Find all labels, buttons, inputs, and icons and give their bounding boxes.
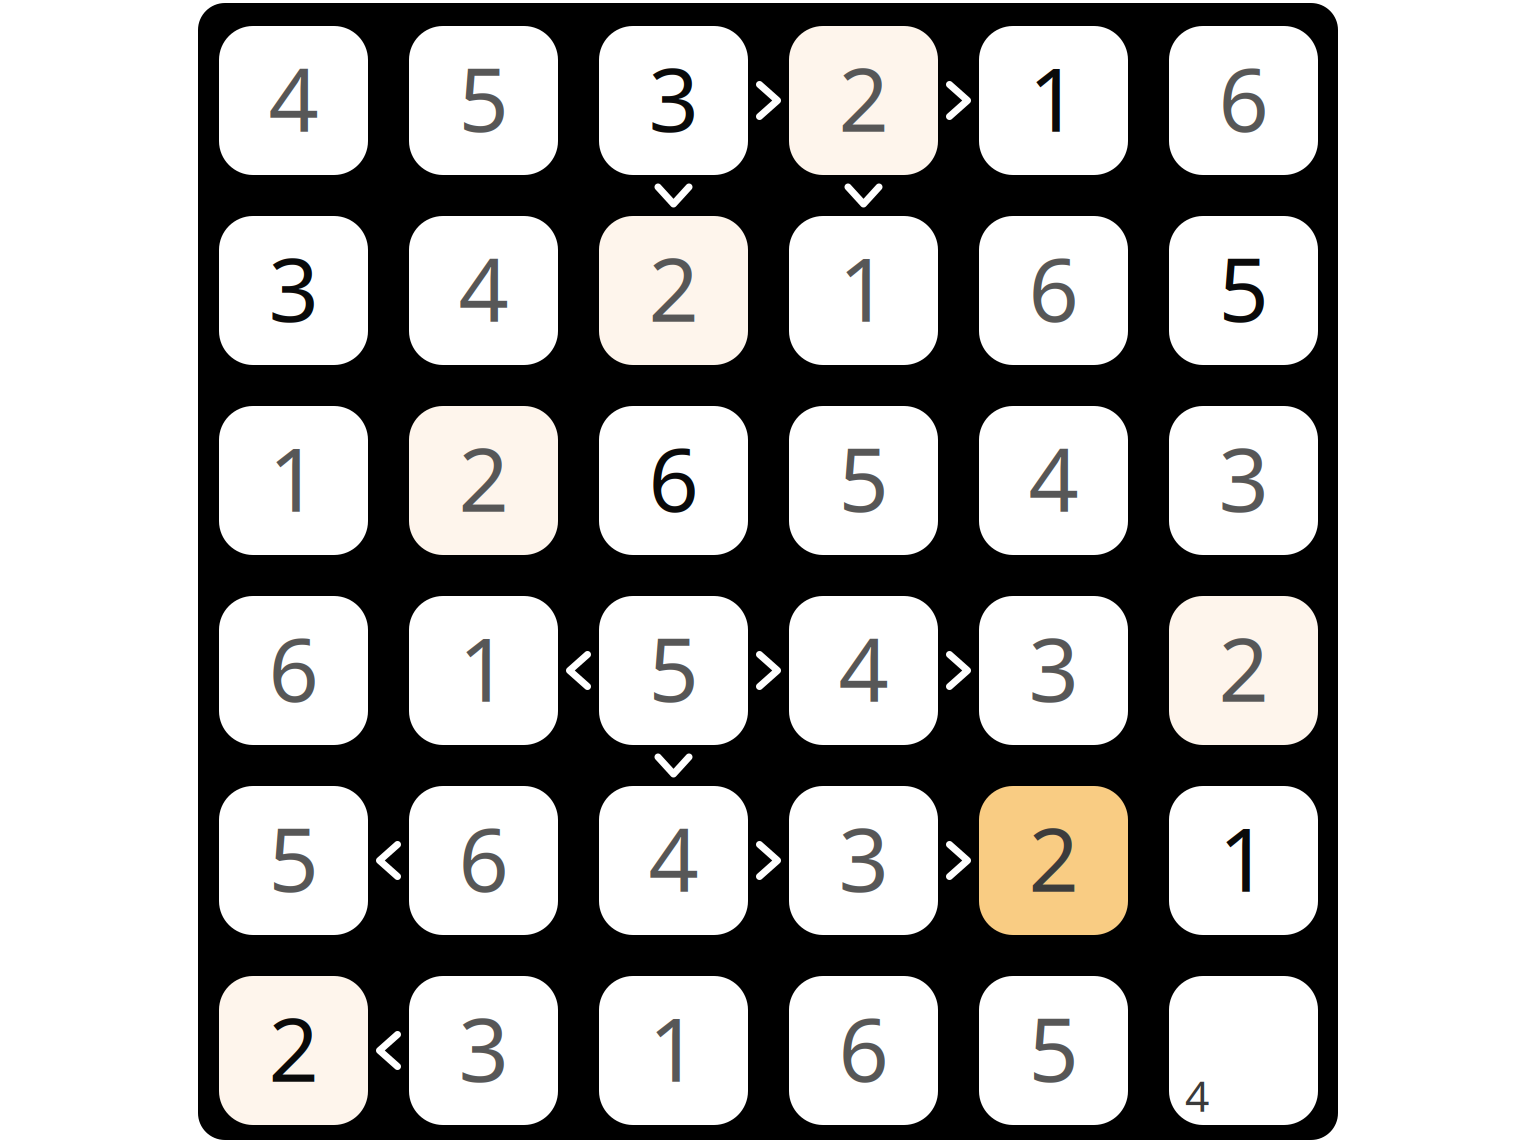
staticText: 5 xyxy=(648,609,698,726)
button[interactable]: Row 1, column 1, 4 xyxy=(219,26,368,175)
button[interactable]: Row 5, column 4, 3 xyxy=(789,786,938,935)
staticText: 2 xyxy=(458,419,508,536)
staticText: 6 xyxy=(648,419,698,536)
button[interactable]: Row 1, column 3, clue 3 xyxy=(599,26,748,175)
button[interactable]: Row 6, column 6, empty, note 4 xyxy=(1169,976,1318,1125)
staticText: 6 xyxy=(458,799,508,916)
button[interactable]: Row 5, column 6, clue 1 xyxy=(1169,786,1318,935)
staticText: 1 xyxy=(458,609,508,726)
staticText: 5 xyxy=(458,39,508,156)
staticText: 1 xyxy=(648,989,698,1106)
button[interactable]: Row 6, column 2, 3 xyxy=(409,976,558,1125)
button[interactable]: Row 2, column 2, 4 xyxy=(409,216,558,365)
staticText: 5 xyxy=(268,799,318,916)
staticText: 1 xyxy=(838,229,888,346)
button[interactable]: Row 6, column 5, 5 xyxy=(979,976,1128,1125)
button[interactable]: Row 5, column 2, 6 xyxy=(409,786,558,935)
staticText: 5 xyxy=(838,419,888,536)
button[interactable]: Row 2, column 1, clue 3 xyxy=(219,216,368,365)
staticText: 4 xyxy=(268,39,318,156)
staticText: 4 xyxy=(1185,1067,1209,1123)
button[interactable]: Row 5, column 3, 4 xyxy=(599,786,748,935)
staticText: 3 xyxy=(1218,419,1268,536)
button[interactable]: Row 3, column 1, 1 xyxy=(219,406,368,555)
button[interactable]: Row 3, column 2, 2 xyxy=(409,406,558,555)
button[interactable]: Row 3, column 4, 5 xyxy=(789,406,938,555)
staticText: 2 xyxy=(838,39,888,156)
staticText: 1 xyxy=(1218,799,1268,916)
staticText: 1 xyxy=(268,419,318,536)
staticText: 4 xyxy=(838,609,888,726)
button[interactable]: Row 4, column 5, 3 xyxy=(979,596,1128,745)
button[interactable]: Row 5, column 5, 2 xyxy=(979,786,1128,935)
button[interactable]: Row 1, column 6, 6 xyxy=(1169,26,1318,175)
button[interactable]: Row 1, column 5, clue 1 xyxy=(979,26,1128,175)
staticText: 2 xyxy=(648,229,698,346)
staticText: 3 xyxy=(648,39,698,156)
staticText: 6 xyxy=(838,989,888,1106)
staticText: 2 xyxy=(1028,799,1078,916)
button[interactable]: Row 4, column 4, 4 xyxy=(789,596,938,745)
staticText: 3 xyxy=(838,799,888,916)
staticText: 4 xyxy=(1028,419,1078,536)
staticText: 6 xyxy=(268,609,318,726)
button[interactable]: Row 3, column 3, clue 6 xyxy=(599,406,748,555)
button[interactable]: Row 2, column 6, clue 5 xyxy=(1169,216,1318,365)
button[interactable]: Row 4, column 3, 5 xyxy=(599,596,748,745)
staticText: 2 xyxy=(268,989,318,1106)
button[interactable]: Row 3, column 5, 4 xyxy=(979,406,1128,555)
button[interactable]: Row 6, column 1, clue 2 xyxy=(219,976,368,1125)
button[interactable]: Row 6, column 4, 6 xyxy=(789,976,938,1125)
button[interactable]: Row 2, column 3, 2 xyxy=(599,216,748,365)
button[interactable]: Row 2, column 4, 1 xyxy=(789,216,938,365)
staticText: 6 xyxy=(1028,229,1078,346)
staticText: 5 xyxy=(1028,989,1078,1106)
button[interactable]: Row 1, column 4, 2 xyxy=(789,26,938,175)
staticText: 2 xyxy=(1218,609,1268,726)
button[interactable]: Row 4, column 1, 6 xyxy=(219,596,368,745)
staticText: 1 xyxy=(1028,39,1078,156)
button[interactable]: Row 3, column 6, 3 xyxy=(1169,406,1318,555)
button[interactable]: Row 6, column 3, 1 xyxy=(599,976,748,1125)
staticText: 4 xyxy=(458,229,508,346)
button[interactable]: Row 5, column 1, 5 xyxy=(219,786,368,935)
staticText: 3 xyxy=(458,989,508,1106)
button[interactable]: Row 2, column 5, 6 xyxy=(979,216,1128,365)
button[interactable]: Row 1, column 2, 5 xyxy=(409,26,558,175)
staticText: 3 xyxy=(1028,609,1078,726)
staticText: 3 xyxy=(268,229,318,346)
button[interactable]: Row 4, column 2, 1 xyxy=(409,596,558,745)
staticText: 4 xyxy=(648,799,698,916)
staticText: 6 xyxy=(1218,39,1268,156)
button[interactable]: Row 4, column 6, 2 xyxy=(1169,596,1318,745)
staticText: 5 xyxy=(1218,229,1268,346)
